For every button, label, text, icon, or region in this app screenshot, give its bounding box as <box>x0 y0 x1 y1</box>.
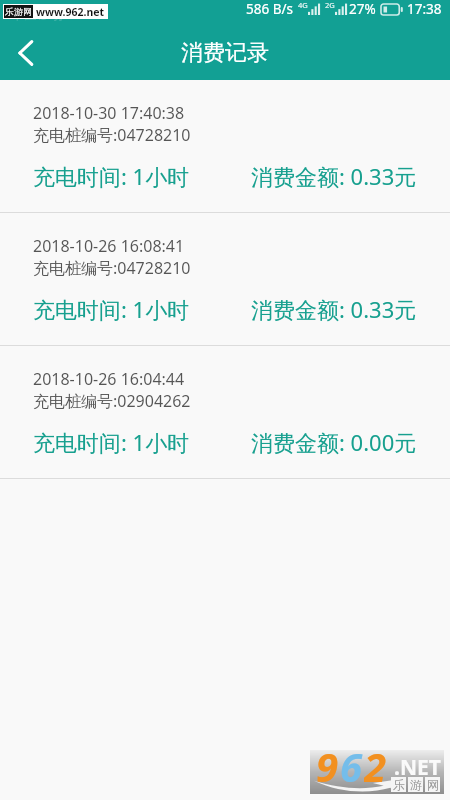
staticText: 乐 <box>393 777 405 792</box>
staticText: 充电桩编号:02904262 <box>33 390 191 412</box>
staticText: 586 B/s <box>246 0 293 18</box>
staticText: 消费记录 <box>181 39 269 67</box>
staticText: 充电时间: 1小时 <box>33 161 190 191</box>
button[interactable]: 2018-10-26 16:04:44 <box>0 346 450 479</box>
staticText: 充电桩编号:04728210 <box>33 257 191 279</box>
staticText: 9 <box>316 739 340 783</box>
staticText: 乐游网 <box>5 6 32 17</box>
staticText: 中国移动 <box>11 6 63 22</box>
button[interactable]: Back <box>0 26 51 80</box>
staticText: 2 <box>364 739 388 783</box>
staticText: www.962.net <box>36 5 105 19</box>
staticText: 消费金额: 0.33元 <box>251 294 417 324</box>
staticText: 17:38 <box>407 0 442 18</box>
staticText: 充电时间: 1小时 <box>33 294 190 324</box>
staticText: 网 <box>427 777 439 792</box>
button[interactable]: 2018-10-26 16:08:41 <box>0 213 450 346</box>
staticText: 游 <box>410 777 422 792</box>
button[interactable]: 2018-10-30 17:40:38 <box>0 80 450 213</box>
staticText: 27% <box>349 0 376 18</box>
staticText: 充电桩编号:04728210 <box>33 124 191 146</box>
staticText: 4G <box>298 0 308 10</box>
staticText: 消费金额: 0.33元 <box>251 161 417 191</box>
staticText: .NET <box>394 753 441 782</box>
staticText: 2018-10-26 16:08:41 <box>33 235 185 257</box>
staticText: 2018-10-30 17:40:38 <box>33 102 185 124</box>
staticText: 充电时间: 1小时 <box>33 427 190 457</box>
staticText: 6 <box>340 739 364 783</box>
staticText: 消费金额: 0.00元 <box>251 427 417 457</box>
staticText: 2018-10-26 16:04:44 <box>33 368 185 390</box>
staticText: 2G <box>325 0 335 10</box>
